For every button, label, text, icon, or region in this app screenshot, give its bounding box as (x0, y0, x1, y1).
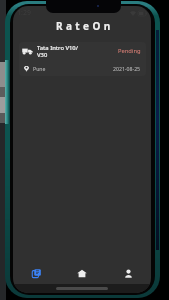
button[interactable]: Home (59, 265, 105, 282)
staticText: 1:29 (17, 8, 31, 18)
button[interactable]: Tata Intro V10/ V30 (19, 42, 146, 76)
staticText: 2021-08-25 (113, 65, 141, 72)
staticText: Tata Intro V10/ V30 (37, 44, 78, 59)
button[interactable]: Profile (105, 265, 151, 282)
staticText: Pending (118, 47, 141, 55)
staticText: RateOn (56, 19, 114, 33)
button[interactable]: Trips (13, 265, 59, 282)
staticText: Pune (33, 65, 46, 72)
